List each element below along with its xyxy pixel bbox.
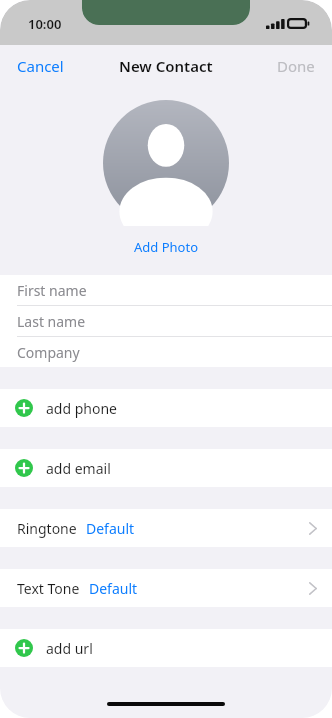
staticText: Ringtone: [17, 519, 77, 538]
button[interactable]: add phone: [0, 389, 332, 427]
staticText: 10:00: [28, 15, 62, 33]
staticText: Done: [277, 56, 315, 76]
staticText: New Contact: [119, 56, 213, 76]
staticText: add email: [46, 459, 111, 478]
button[interactable]: Company: [0, 337, 332, 367]
staticText: First name: [17, 281, 87, 300]
staticText: Last name: [17, 312, 86, 331]
button[interactable]: Cancel: [0, 47, 81, 85]
button[interactable]: Done: [260, 47, 332, 85]
staticText: Company: [17, 343, 80, 362]
button[interactable]: add email: [0, 449, 332, 487]
staticText: Text Tone: [17, 579, 80, 598]
staticText: Default: [86, 519, 135, 538]
button[interactable]: Add contact photo: [103, 100, 229, 226]
button[interactable]: Ringtone: [0, 509, 332, 547]
button[interactable]: First name: [0, 275, 332, 306]
staticText: add phone: [46, 399, 117, 418]
staticText: Default: [89, 579, 138, 598]
button[interactable]: add url: [0, 629, 332, 667]
button[interactable]: Last name: [0, 306, 332, 337]
staticText: Add Photo: [134, 238, 198, 256]
button[interactable]: Text Tone: [0, 569, 332, 607]
staticText: Cancel: [17, 56, 64, 76]
staticText: add url: [46, 639, 93, 658]
button[interactable]: Add Photo: [126, 235, 206, 259]
